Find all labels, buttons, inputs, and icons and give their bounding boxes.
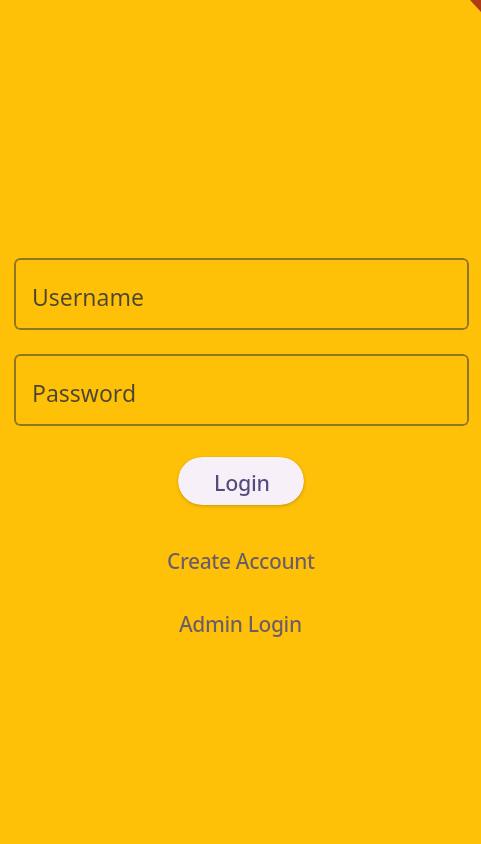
button[interactable]: Admin Login [169, 605, 312, 644]
button[interactable]: Create Account [157, 542, 325, 581]
staticText: Password [32, 377, 137, 408]
staticText: Username [32, 281, 144, 312]
button[interactable]: Login [178, 457, 304, 505]
staticText: Login [214, 468, 270, 497]
button[interactable]: Password [14, 354, 469, 426]
button[interactable]: Username [14, 258, 469, 330]
staticText: Admin Login [179, 610, 302, 639]
staticText: Create Account [167, 547, 315, 576]
